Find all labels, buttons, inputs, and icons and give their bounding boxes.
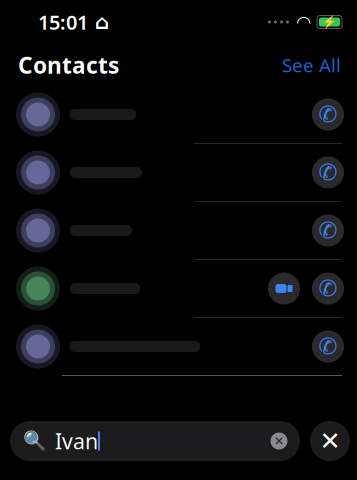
button[interactable]: Video call bbox=[268, 272, 300, 304]
staticText: ✆ bbox=[318, 160, 337, 185]
staticText: ✕ bbox=[274, 434, 284, 448]
staticText: ✆ bbox=[318, 276, 337, 301]
staticText: ⌂ bbox=[88, 11, 109, 33]
staticText: ✆ bbox=[318, 334, 337, 359]
button[interactable]: See All bbox=[282, 53, 357, 77]
staticText: Ivan bbox=[55, 427, 98, 455]
button[interactable]: Call bbox=[312, 330, 344, 362]
staticText: 15:01 bbox=[38, 9, 88, 35]
button[interactable]: Clear text bbox=[264, 426, 294, 456]
staticText: See All bbox=[282, 53, 341, 77]
staticText: ✆ bbox=[318, 218, 337, 243]
staticText: 🔍 bbox=[23, 430, 46, 452]
staticText: Contacts bbox=[18, 50, 119, 80]
button[interactable]: Call bbox=[312, 98, 344, 130]
button[interactable]: Close bbox=[310, 421, 350, 461]
staticText: ◠ bbox=[297, 12, 310, 32]
staticText: ⚡ bbox=[322, 15, 337, 29]
button[interactable]: Call bbox=[312, 156, 344, 188]
button[interactable]: Call bbox=[312, 214, 344, 246]
staticText: ✕ bbox=[319, 427, 340, 455]
button[interactable]: Call bbox=[312, 272, 344, 304]
staticText: ✆ bbox=[318, 102, 337, 127]
